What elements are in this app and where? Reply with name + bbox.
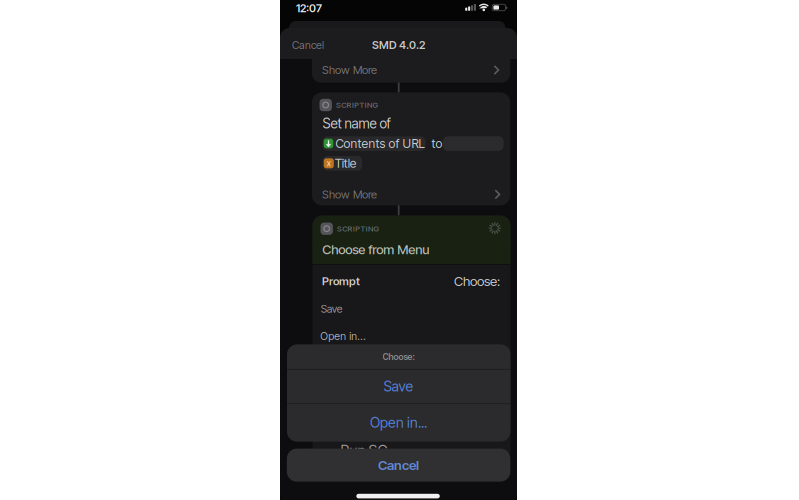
staticText: Choose from Menu (322, 242, 429, 257)
staticText: x (327, 158, 331, 168)
button[interactable]: Cancel (287, 449, 510, 482)
button[interactable]: Show More (322, 187, 500, 201)
staticText: SMD 4.0.2 (372, 38, 425, 52)
staticText: Show More (322, 63, 377, 77)
staticText: 12:07 (296, 2, 322, 15)
staticText: Choose: (454, 273, 500, 289)
staticText: Title (335, 156, 357, 171)
staticText: Prompt (322, 274, 360, 288)
staticText: SCRIPTING (337, 224, 378, 233)
staticText: Save (321, 302, 343, 315)
button[interactable]: Show More (322, 63, 499, 77)
staticText: Set name of (322, 115, 390, 132)
staticText: Save (384, 378, 414, 395)
staticText: Open in... (370, 414, 427, 431)
staticText: Cancel (378, 457, 419, 473)
button[interactable]: Open in... (320, 329, 400, 343)
button[interactable]: Open in... (287, 404, 510, 441)
staticText: Run SC (340, 442, 387, 459)
staticText: Choose: (383, 351, 415, 362)
staticText: Open in... (320, 329, 366, 342)
staticText: Contents of URL (335, 136, 424, 151)
button[interactable]: Save (287, 370, 510, 403)
staticText: to (431, 136, 442, 151)
staticText: SCRIPTING (336, 100, 377, 110)
button[interactable]: Save (321, 302, 401, 316)
staticText: Show More (322, 188, 377, 201)
button[interactable]: Cancel (292, 38, 332, 52)
staticText: Cancel (292, 38, 324, 51)
